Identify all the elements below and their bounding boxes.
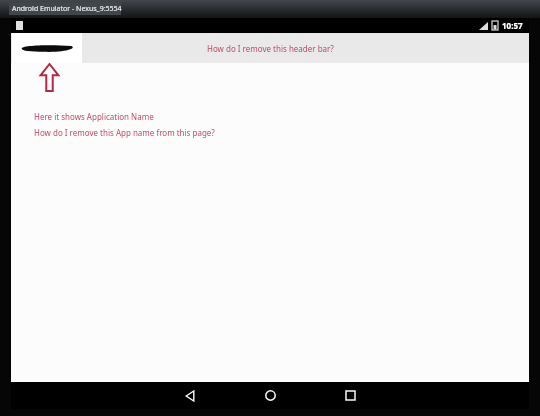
button[interactable]: Back bbox=[173, 382, 207, 409]
staticText: Android Emulator - Nexus_9:5554 bbox=[12, 4, 122, 14]
staticText: How do I remove this App name from this … bbox=[34, 127, 215, 138]
button[interactable]: Recent apps bbox=[333, 382, 367, 409]
button[interactable]: Home bbox=[253, 382, 287, 409]
staticText: Here it shows Application Name bbox=[34, 111, 154, 122]
button[interactable]: Application name bbox=[12, 33, 82, 63]
staticText: 10:57 bbox=[502, 20, 523, 31]
staticText: How do I remove this header bar? bbox=[207, 43, 334, 54]
button[interactable]: Application name bbox=[11, 33, 529, 63]
